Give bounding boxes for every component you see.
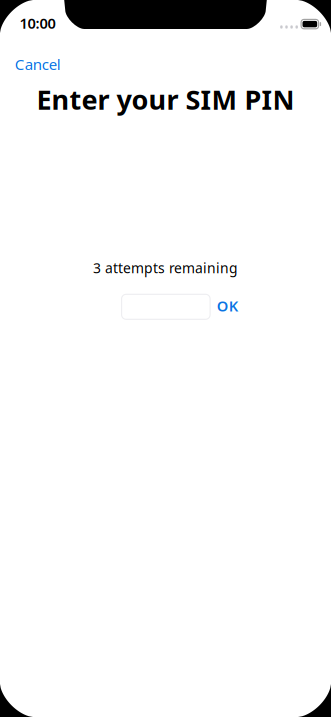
staticText: 3 attempts remaining bbox=[93, 258, 238, 277]
staticText: Enter your SIM PIN bbox=[36, 81, 294, 118]
staticText: 10:00 bbox=[20, 13, 56, 33]
staticText: Cancel bbox=[15, 54, 61, 74]
button[interactable]: SIM PIN bbox=[122, 294, 210, 319]
button[interactable]: OK bbox=[203, 282, 252, 330]
staticText: OK bbox=[217, 296, 238, 316]
button[interactable]: Cancel bbox=[1, 43, 75, 85]
